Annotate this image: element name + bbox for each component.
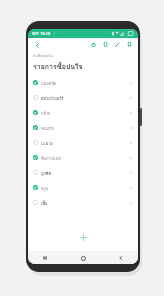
button[interactable]: Copy <box>101 40 110 49</box>
staticText: ช็อกโกแลต <box>41 155 129 161</box>
staticText: รายการซื้อปนใจ <box>33 61 83 72</box>
staticText: สตรอว์เบอร์รี่ <box>41 95 129 101</box>
staticText: มะม่วง <box>41 140 129 146</box>
button[interactable]: นมสดจืด <box>28 75 138 90</box>
button[interactable]: ขนมปัง <box>28 120 138 135</box>
button[interactable]: มะม่วง <box>28 135 138 150</box>
button[interactable]: ช็อกโกแลต <box>28 150 138 165</box>
staticText: บันทึกของฉัน <box>33 53 54 59</box>
button[interactable]: Add item <box>77 231 90 244</box>
button[interactable]: เนื้อ <box>28 195 138 210</box>
staticText: กล้วย <box>41 110 129 116</box>
button[interactable]: Back <box>32 40 42 50</box>
staticText: นมสดจืด <box>41 80 129 86</box>
button[interactable]: ลูกพีช <box>28 165 138 180</box>
button[interactable]: สตรอว์เบอร์รี่ <box>28 90 138 105</box>
staticText: องุ่น <box>41 185 129 191</box>
staticText: ขนมปัง <box>41 125 129 131</box>
button[interactable]: Bookmark <box>125 40 134 49</box>
staticText: SKT 18:10 <box>32 31 51 36</box>
button[interactable]: Edit <box>113 40 122 49</box>
button[interactable]: กล้วย <box>28 105 138 120</box>
staticText: ลูกพีช <box>41 170 129 176</box>
button[interactable]: Home <box>78 253 88 263</box>
staticText: เนื้อ <box>41 200 129 206</box>
button[interactable]: Lock <box>89 40 98 49</box>
button[interactable]: Back <box>116 253 126 263</box>
button[interactable]: องุ่น <box>28 180 138 195</box>
button[interactable]: Recent apps <box>40 253 50 263</box>
